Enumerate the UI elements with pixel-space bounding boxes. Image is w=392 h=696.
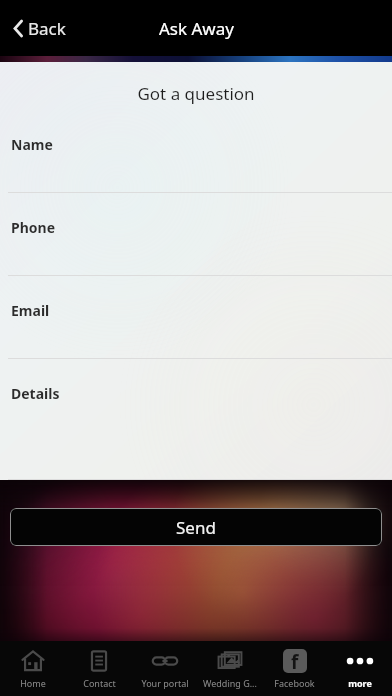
button[interactable]: Wedding Gallery xyxy=(197,644,262,693)
staticText: f xyxy=(291,649,299,673)
other: Contact xyxy=(88,650,110,672)
staticText: Home xyxy=(20,677,46,689)
staticText: Your portal xyxy=(141,677,189,689)
other: Your portal xyxy=(152,654,178,668)
button[interactable]: Your portal xyxy=(132,644,197,693)
button[interactable]: Send xyxy=(10,508,382,546)
staticText: Name xyxy=(11,135,53,154)
other: Home xyxy=(21,649,45,673)
staticText: Details xyxy=(11,384,60,403)
staticText: Wedding G... xyxy=(203,677,257,689)
staticText: more xyxy=(348,677,372,689)
staticText: Ask Away xyxy=(159,17,234,40)
staticText: Contact xyxy=(83,677,116,689)
button[interactable]: Home xyxy=(0,644,66,693)
button[interactable]: More xyxy=(327,644,392,693)
button[interactable]: Facebook xyxy=(262,644,327,693)
staticText: Back xyxy=(28,17,66,40)
staticText: Facebook xyxy=(274,677,315,689)
other: Facebook xyxy=(283,649,307,673)
other: Wedding Gallery xyxy=(217,650,243,672)
button[interactable]: Contact xyxy=(66,644,132,693)
staticText: Phone xyxy=(11,218,56,237)
staticText: Email xyxy=(11,301,50,320)
other: More xyxy=(345,657,375,665)
staticText: Send xyxy=(176,516,216,539)
button[interactable]: Back xyxy=(10,11,70,46)
staticText: Got a question xyxy=(0,82,392,105)
